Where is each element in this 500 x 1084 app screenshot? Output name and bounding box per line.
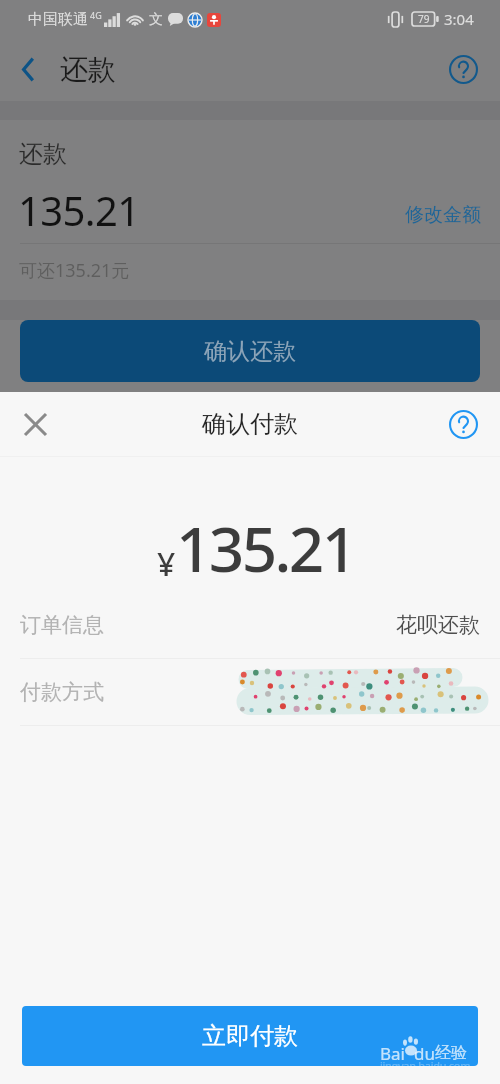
button[interactable]: Help xyxy=(449,55,478,84)
staticText: ¥ xyxy=(157,542,176,586)
staticText: 花呗还款 xyxy=(396,612,480,638)
staticText: jingyan.baidu.com xyxy=(380,1058,471,1066)
button[interactable]: 确认还款 xyxy=(20,320,480,382)
button[interactable]: Help xyxy=(449,410,478,439)
staticText: 立即付款 xyxy=(202,1021,298,1051)
staticText: 确认付款 xyxy=(202,409,298,439)
button[interactable]: Back xyxy=(0,42,128,97)
staticText: 付款方式 xyxy=(20,679,104,705)
staticText: du xyxy=(414,1042,435,1065)
staticText: 135.21 xyxy=(176,506,355,590)
staticText: Bai xyxy=(380,1042,405,1065)
staticText: 中国联通 xyxy=(28,10,88,29)
staticText: 135.21 xyxy=(18,183,140,237)
button[interactable]: Close xyxy=(13,402,57,446)
staticText: 订单信息 xyxy=(20,612,104,638)
button[interactable]: 立即付款 xyxy=(22,1006,478,1066)
staticText: 经验 xyxy=(435,1043,467,1063)
staticText: 还款 xyxy=(60,52,116,87)
button[interactable]: 修改金额 xyxy=(405,203,481,227)
staticText: 4G xyxy=(90,9,102,21)
staticText: 还款 xyxy=(19,139,67,169)
staticText: 可还135.21元 xyxy=(19,258,130,283)
staticText: 确认还款 xyxy=(204,337,296,366)
button[interactable]: 付款方式 xyxy=(0,659,500,725)
button[interactable]: 订单信息 xyxy=(0,592,500,658)
staticText: 79 xyxy=(418,12,430,26)
staticText: 文 xyxy=(149,11,163,29)
staticText: 3:04 xyxy=(444,9,474,29)
